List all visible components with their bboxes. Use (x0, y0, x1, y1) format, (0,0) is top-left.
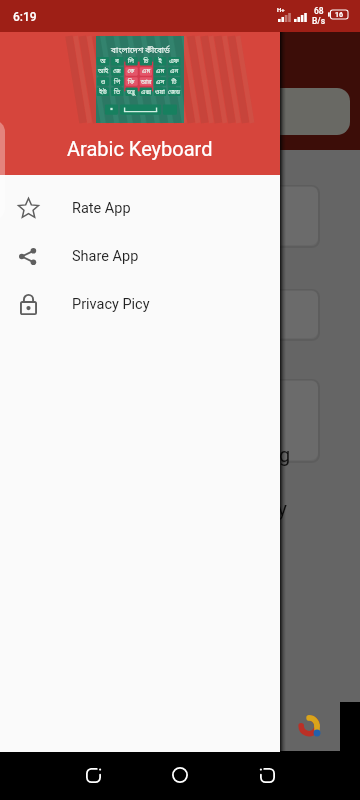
staticText: চি (140, 57, 152, 65)
button[interactable]: Share App (0, 232, 280, 280)
staticText: পি (111, 78, 123, 86)
staticText: Arabic Keyboard (67, 137, 213, 160)
staticText: ওয়া (154, 88, 166, 96)
staticText: ডব্লু (125, 88, 137, 96)
staticText: ইউ (97, 88, 109, 96)
staticText: 68 (314, 6, 324, 16)
staticText: কে (125, 67, 137, 75)
staticText: ও (97, 78, 109, 86)
staticText: এম (154, 67, 166, 75)
staticText: cy (267, 497, 287, 520)
staticText: B/s (312, 16, 326, 26)
button[interactable]: Recent apps (243, 751, 291, 799)
staticText: ব (111, 57, 123, 65)
staticText: Rate App (72, 200, 131, 217)
button[interactable]: Back (69, 751, 117, 799)
button[interactable]: Privacy Picy (0, 280, 280, 328)
staticText: কি (125, 78, 137, 86)
staticText: এক্স (140, 88, 152, 96)
staticText: Privacy Picy (72, 296, 150, 313)
staticText: এন (168, 67, 180, 75)
staticText: ng (268, 443, 291, 466)
staticText: 16 (335, 11, 344, 19)
staticText: আই (97, 67, 109, 75)
staticText: লি (125, 57, 137, 65)
staticText: H+ (277, 6, 285, 13)
staticText: 6:19 (13, 10, 37, 24)
staticText: এফ (168, 57, 180, 65)
staticText: টি (168, 78, 180, 86)
staticText: বাংলাদেশ কীবোর্ড (111, 45, 170, 56)
staticText: ই (154, 57, 166, 65)
staticText: জেড (168, 88, 180, 96)
staticText: এম (140, 67, 152, 75)
staticText: আর (140, 78, 152, 86)
button[interactable]: Home (156, 751, 204, 799)
staticText: ভি (111, 88, 123, 96)
button[interactable]: Rate App (0, 184, 280, 232)
staticText: জে (111, 67, 123, 75)
staticText: অ (97, 57, 109, 65)
staticText: এস (154, 78, 166, 86)
staticText: Share App (72, 248, 139, 265)
